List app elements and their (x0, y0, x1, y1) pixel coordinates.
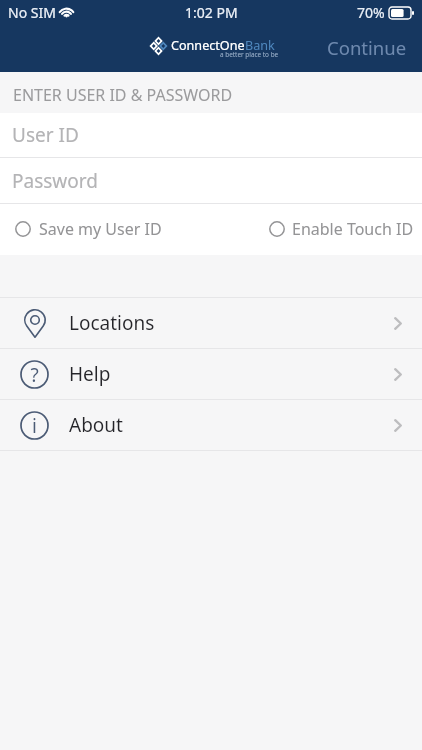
staticText: About (69, 412, 123, 438)
staticText: No SIM (8, 3, 56, 22)
button[interactable]: User ID (0, 113, 422, 157)
staticText: Save my User ID (39, 218, 162, 240)
staticText: i (32, 413, 37, 439)
staticText: Locations (69, 310, 155, 336)
staticText: Continue (327, 35, 407, 60)
other: Wi-Fi (59, 7, 74, 18)
staticText: ConnectOne (171, 37, 245, 54)
staticText: User ID (12, 122, 79, 148)
button[interactable]: Enable Touch ID (262, 210, 421, 248)
button[interactable]: Password (0, 158, 422, 203)
button[interactable]: i (0, 400, 422, 450)
staticText: Password (12, 168, 98, 194)
staticText: 70% (357, 3, 385, 22)
button[interactable]: Locations (0, 298, 422, 348)
button[interactable]: Continue (313, 28, 421, 67)
staticText: Enable Touch ID (292, 218, 414, 240)
other: Battery 70 percent (389, 7, 414, 19)
staticText: a better place to be (220, 50, 279, 59)
staticText: ENTER USER ID & PASSWORD (13, 84, 233, 106)
staticText: ? (30, 362, 39, 388)
staticText: Bank (245, 37, 275, 54)
button[interactable]: ? (0, 349, 422, 399)
staticText: Help (69, 361, 111, 387)
staticText: 1:02 PM (185, 3, 238, 22)
button[interactable]: Save my User ID (8, 210, 169, 248)
